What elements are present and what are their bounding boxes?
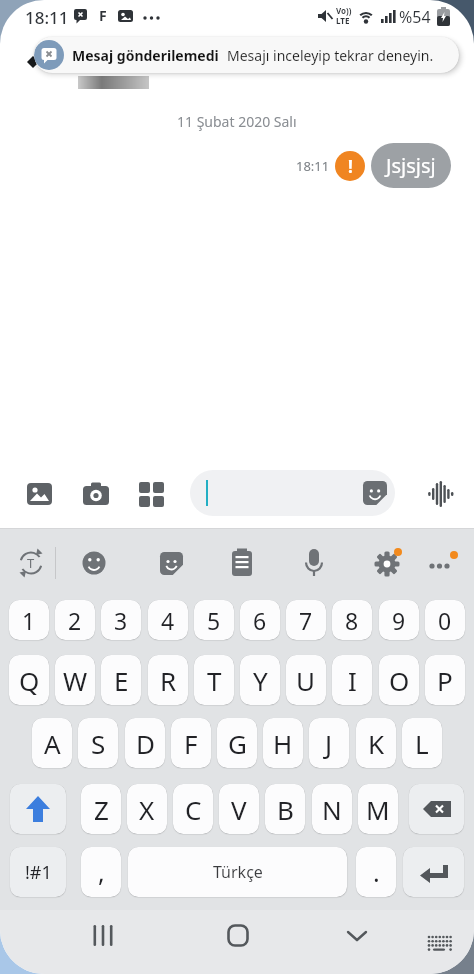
button[interactable]: 3: [101, 600, 141, 640]
button[interactable]: 7: [286, 600, 326, 640]
button[interactable]: [296, 545, 332, 581]
staticText: Mesajı inceleyip tekrar deneyin.: [227, 46, 434, 65]
staticText: Z: [94, 792, 109, 827]
button[interactable]: B: [265, 784, 305, 834]
button[interactable]: Jsjsjsj: [371, 143, 451, 188]
staticText: 2: [68, 605, 82, 636]
staticText: 5: [207, 605, 221, 636]
button[interactable]: R: [148, 655, 188, 705]
button[interactable]: !: [335, 151, 365, 181]
button[interactable]: S: [78, 718, 118, 768]
button[interactable]: 9: [379, 600, 419, 640]
button[interactable]: L: [402, 718, 442, 768]
button[interactable]: [10, 784, 66, 834]
button[interactable]: [218, 916, 258, 956]
staticText: Türkçe: [213, 861, 263, 883]
staticText: W: [63, 663, 88, 698]
button[interactable]: [337, 916, 377, 956]
button[interactable]: O: [379, 655, 419, 705]
button[interactable]: E: [101, 655, 141, 705]
button[interactable]: [81, 479, 111, 509]
button[interactable]: [424, 930, 458, 960]
button[interactable]: [409, 784, 464, 834]
staticText: M: [366, 792, 390, 827]
staticText: Y: [253, 663, 268, 698]
button[interactable]: X: [127, 784, 167, 834]
staticText: F: [99, 6, 107, 25]
button[interactable]: [427, 481, 453, 507]
button[interactable]: [83, 916, 123, 956]
button[interactable]: [76, 545, 112, 581]
staticText: 3: [114, 605, 128, 636]
staticText: 18:11: [25, 6, 69, 29]
staticText: O: [389, 663, 410, 698]
button[interactable]: H: [263, 718, 303, 768]
button[interactable]: [370, 545, 406, 581]
button[interactable]: [362, 480, 388, 506]
button[interactable]: [137, 479, 167, 509]
button[interactable]: W: [55, 655, 95, 705]
button[interactable]: U: [286, 655, 326, 705]
staticText: R: [160, 663, 177, 698]
staticText: T: [207, 663, 222, 698]
button[interactable]: G: [217, 718, 257, 768]
button[interactable]: J: [309, 718, 349, 768]
button[interactable]: 5: [194, 600, 234, 640]
button[interactable]: 0: [425, 600, 465, 640]
button[interactable]: [190, 470, 395, 516]
staticText: LTE: [336, 15, 350, 26]
button[interactable]: N: [312, 784, 352, 834]
button[interactable]: F: [171, 718, 211, 768]
button[interactable]: [153, 545, 189, 581]
staticText: 6: [253, 605, 267, 636]
button[interactable]: A: [32, 718, 72, 768]
staticText: F: [184, 726, 198, 761]
button[interactable]: Y: [240, 655, 280, 705]
button[interactable]: K: [356, 718, 396, 768]
staticText: .: [373, 855, 380, 889]
staticText: 8: [345, 605, 359, 636]
button[interactable]: Q: [9, 655, 49, 705]
staticText: 18:11: [296, 157, 330, 175]
button[interactable]: !#1: [10, 847, 66, 897]
staticText: 7: [299, 605, 313, 636]
staticText: 0: [438, 605, 452, 636]
button[interactable]: T: [13, 545, 49, 581]
button[interactable]: 2: [55, 600, 95, 640]
button[interactable]: P: [425, 655, 465, 705]
button[interactable]: [25, 479, 55, 509]
button[interactable]: 8: [332, 600, 372, 640]
staticText: 11 Şubat 2020 Salı: [177, 112, 297, 131]
button[interactable]: I: [332, 655, 372, 705]
staticText: 1: [22, 605, 36, 636]
staticText: Q: [19, 663, 40, 698]
button[interactable]: [403, 847, 464, 897]
staticText: I: [348, 663, 357, 698]
button[interactable]: Türkçe: [128, 847, 347, 897]
button[interactable]: ,: [81, 847, 121, 897]
staticText: L: [415, 726, 429, 761]
button[interactable]: .: [356, 847, 396, 897]
staticText: B: [277, 792, 294, 827]
button[interactable]: Mesaj gönderilemedi: [34, 37, 459, 73]
staticText: V: [231, 792, 247, 827]
button[interactable]: D: [125, 718, 165, 768]
button[interactable]: T: [194, 655, 234, 705]
button[interactable]: 6: [240, 600, 280, 640]
button[interactable]: Z: [81, 784, 121, 834]
button[interactable]: [424, 545, 460, 581]
button[interactable]: 4: [148, 600, 188, 640]
button[interactable]: [224, 545, 260, 581]
staticText: K: [368, 726, 385, 761]
button[interactable]: C: [173, 784, 213, 834]
staticText: U: [296, 663, 316, 698]
staticText: Vo)): [336, 5, 352, 16]
button[interactable]: M: [358, 784, 398, 834]
staticText: Mesaj gönderilemedi: [72, 46, 219, 65]
button[interactable]: V: [219, 784, 259, 834]
staticText: P: [437, 663, 453, 698]
staticText: %54: [399, 6, 431, 28]
staticText: !#1: [25, 860, 52, 885]
staticText: S: [91, 726, 106, 761]
button[interactable]: 1: [9, 600, 49, 640]
